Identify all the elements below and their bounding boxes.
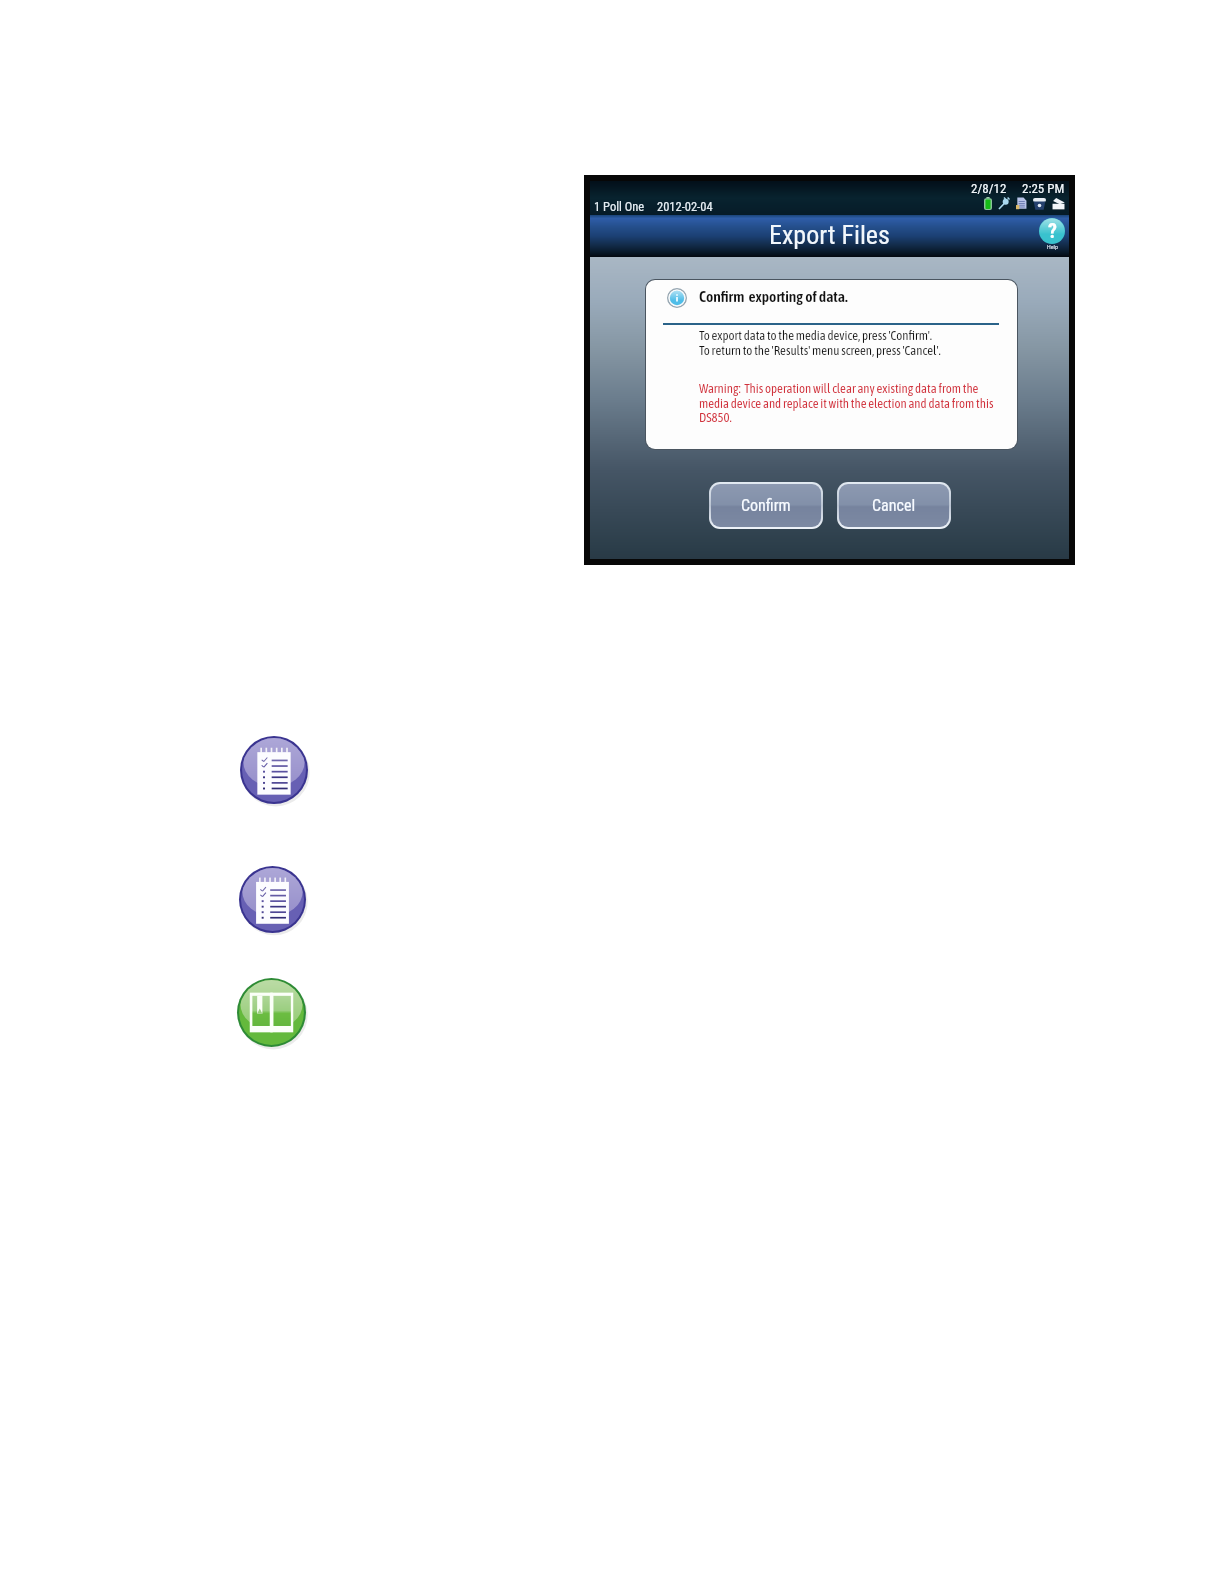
button[interactable]: Audit log report — [239, 866, 306, 933]
staticText: To export data to the media device, pres… — [699, 328, 941, 357]
staticText: 2/8/12 — [971, 181, 1007, 196]
staticText: Warning: This operation will clear any e… — [699, 381, 994, 424]
staticText: Cancel — [872, 496, 916, 515]
staticText: 2:25 PM — [1022, 181, 1065, 196]
button[interactable]: Election definition — [237, 978, 306, 1047]
staticText: Confirm exporting of data. — [699, 288, 848, 306]
button[interactable]: Confirm — [711, 484, 821, 527]
button[interactable]: Cancel — [839, 484, 949, 527]
staticText: ? — [1048, 219, 1057, 242]
button[interactable]: Results report — [240, 736, 308, 804]
staticText: 1 Poll One — [594, 199, 645, 214]
button[interactable]: Help — [1038, 217, 1066, 252]
staticText: 2012-02-04 — [657, 199, 713, 214]
staticText: Export Files — [769, 220, 890, 250]
staticText: Confirm — [741, 496, 791, 515]
staticText: Help — [1047, 243, 1058, 250]
